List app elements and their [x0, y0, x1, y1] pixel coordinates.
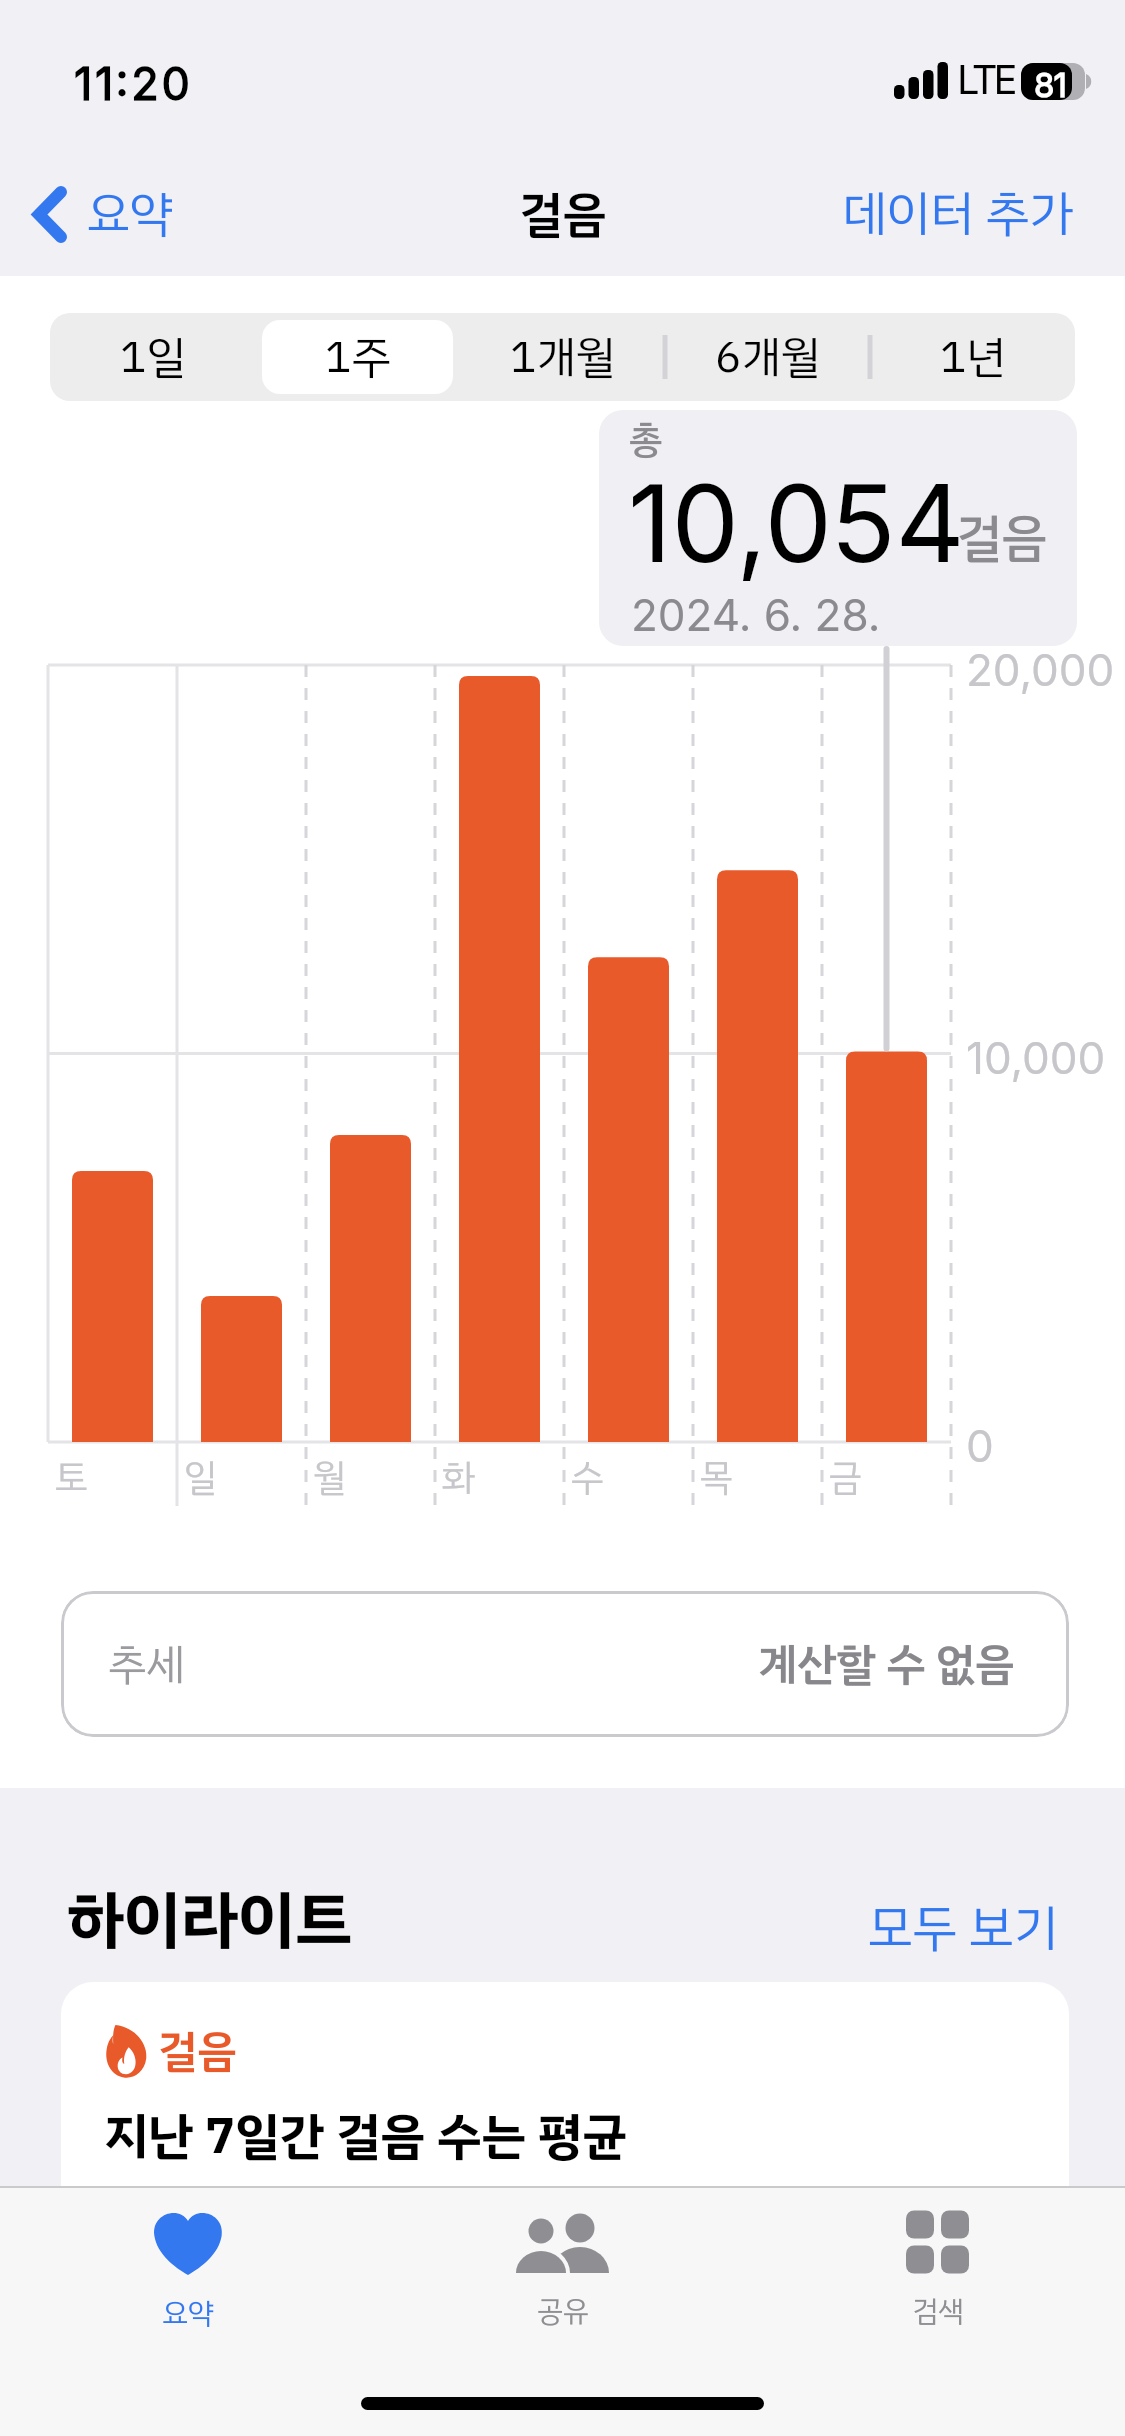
staticText: 10,000 [966, 1031, 1106, 1084]
staticText: 1개월 [510, 324, 615, 390]
staticText: 수 [571, 1450, 605, 1506]
staticText: 화 [442, 1450, 476, 1506]
staticText: 검색 [912, 2290, 964, 2334]
button[interactable]: 검색 [750, 2186, 1125, 2334]
staticText: 월 [313, 1450, 347, 1506]
button[interactable]: 1년 [870, 313, 1075, 401]
staticText: 0 [966, 1419, 994, 1472]
button[interactable]: 추세 [61, 1591, 1069, 1737]
button[interactable]: 1주 [255, 313, 460, 401]
staticText: 계산할 수 없음 [758, 1631, 1015, 1697]
button[interactable]: 모두 보기 [848, 1887, 1125, 1970]
staticText: 1년 [940, 324, 1006, 390]
staticText: 하이라이트 [67, 1873, 353, 1969]
button[interactable]: 6개월 [665, 313, 870, 401]
staticText: 추세 [108, 1632, 185, 1697]
staticText: 1주 [325, 324, 391, 390]
staticText: 10,054 [628, 458, 965, 587]
button[interactable]: 요약 [0, 2186, 375, 2336]
staticText: 금 [829, 1450, 863, 1506]
staticText: 데이터 추가 [843, 177, 1074, 251]
staticText: 11:20 [74, 56, 193, 110]
button[interactable]: Back to 요약 [23, 172, 187, 256]
staticText: 모두 보기 [868, 1891, 1059, 1966]
staticText: 공유 [537, 2290, 589, 2334]
staticText: 요약 [162, 2292, 214, 2336]
staticText: 6개월 [715, 324, 820, 390]
staticText: 걸음 [519, 178, 607, 252]
staticText: LTE [957, 55, 1014, 103]
staticText: 토 [55, 1450, 89, 1506]
staticText: 20,000 [966, 643, 1115, 696]
button[interactable]: 공유 [375, 2186, 750, 2334]
staticText: 81 [1034, 65, 1066, 105]
button[interactable]: 1일 [50, 313, 255, 401]
staticText: 일 [184, 1450, 218, 1506]
staticText: 걸음 [158, 2018, 237, 2084]
staticText: 지난 7일간 걸음 수는 평균 [104, 2099, 628, 2174]
staticText: 걸음 [956, 500, 1047, 577]
staticText: 2024. 6. 28. [631, 588, 881, 641]
button[interactable]: 데이터 추가 [827, 171, 1125, 257]
button[interactable]: 1개월 [460, 313, 665, 401]
staticText: 총 [629, 411, 663, 468]
button[interactable]: 걸음 [61, 1982, 1069, 2382]
staticText: 1일 [120, 324, 186, 390]
staticText: 목 [700, 1450, 734, 1506]
staticText: 요약 [87, 178, 173, 250]
